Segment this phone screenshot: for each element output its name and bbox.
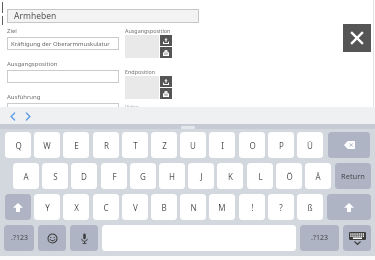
button[interactable]: Return: [335, 163, 371, 189]
button[interactable]: F: [101, 163, 127, 189]
staticText: Q: [15, 140, 22, 151]
button[interactable]: [7, 103, 119, 116]
button[interactable]: W: [34, 132, 60, 158]
staticText: A: [23, 171, 29, 182]
button[interactable]: J: [188, 163, 214, 189]
staticText: Z: [162, 140, 167, 151]
button[interactable]: D: [71, 163, 97, 189]
staticText: B: [161, 202, 167, 213]
button[interactable]: Voice input: [70, 225, 98, 251]
button[interactable]: B: [151, 194, 177, 220]
staticText: Video: [125, 103, 139, 110]
staticText: J: [200, 171, 203, 182]
staticText: L: [258, 171, 263, 182]
button[interactable]: Emoji: [38, 225, 66, 251]
staticText: M: [218, 202, 226, 213]
button[interactable]: U: [180, 132, 206, 158]
staticText: F: [112, 171, 117, 182]
staticText: D: [81, 171, 87, 182]
button[interactable]: Next field: [22, 110, 34, 122]
button[interactable]: T: [122, 132, 148, 158]
staticText: S: [53, 171, 58, 182]
staticText: Armheben: [14, 10, 57, 22]
button[interactable]: Take start position photo: [160, 47, 172, 58]
button[interactable]: Shift: [327, 194, 371, 220]
staticText: .?123: [311, 233, 328, 243]
staticText: V: [133, 202, 138, 213]
button[interactable]: Close: [343, 24, 371, 52]
staticText: X: [74, 202, 79, 213]
staticText: !: [251, 202, 254, 213]
button[interactable]: Kräftigung der Oberarmmuskulatur: [7, 37, 119, 50]
staticText: ß: [307, 202, 313, 213]
button[interactable]: I: [209, 132, 235, 158]
staticText: Ziel: [7, 27, 17, 35]
button[interactable]: M: [209, 194, 235, 220]
staticText: Ausgangsposition: [7, 60, 58, 68]
button[interactable]: N: [180, 194, 206, 220]
button[interactable]: C: [93, 194, 119, 220]
staticText: K: [228, 171, 233, 182]
staticText: ?: [279, 202, 283, 213]
button[interactable]: Backspace: [328, 132, 370, 158]
button[interactable]: Ö: [276, 163, 302, 189]
staticText: E: [74, 140, 79, 151]
staticText: C: [103, 202, 109, 213]
button[interactable]: Take end position photo: [160, 88, 172, 99]
button[interactable]: G: [130, 163, 156, 189]
staticText: Endposition: [125, 68, 156, 75]
button[interactable]: E: [63, 132, 89, 158]
button[interactable]: Ä: [305, 163, 331, 189]
button[interactable]: X: [63, 194, 89, 220]
button[interactable]: R: [93, 132, 119, 158]
staticText: Ausgangsposition: [125, 27, 171, 34]
button[interactable]: Q: [5, 132, 31, 158]
button[interactable]: Hide keyboard: [343, 225, 371, 251]
button[interactable]: Z: [151, 132, 177, 158]
staticText: P: [279, 140, 284, 151]
button[interactable]: P: [268, 132, 294, 158]
staticText: .?123: [11, 233, 28, 243]
button[interactable]: H: [159, 163, 185, 189]
button[interactable]: Y: [34, 194, 60, 220]
button[interactable]: Upload end position image: [160, 76, 172, 87]
staticText: Kräftigung der Oberarmmuskulatur: [11, 40, 110, 48]
staticText: O: [249, 140, 256, 151]
button[interactable]: [7, 70, 119, 83]
button[interactable]: .?123: [4, 225, 34, 251]
button[interactable]: Previous field: [7, 110, 19, 122]
staticText: U: [190, 140, 196, 151]
staticText: Ü: [307, 140, 313, 151]
staticText: T: [133, 140, 138, 151]
button[interactable]: A: [13, 163, 39, 189]
staticText: W: [43, 140, 51, 151]
button[interactable]: Shift: [5, 194, 31, 220]
staticText: Y: [45, 202, 50, 213]
button[interactable]: S: [42, 163, 68, 189]
button[interactable]: V: [122, 194, 148, 220]
staticText: Return: [341, 171, 365, 181]
staticText: I: [221, 140, 224, 151]
button[interactable]: Ü: [297, 132, 323, 158]
staticText: Ä: [315, 171, 321, 182]
staticText: H: [169, 171, 175, 182]
staticText: Ausführung: [7, 93, 41, 101]
button[interactable]: Upload start position image: [160, 35, 172, 46]
button[interactable]: ?: [268, 194, 294, 220]
staticText: Ö: [286, 171, 293, 182]
button[interactable]: O: [239, 132, 265, 158]
staticText: N: [190, 202, 197, 213]
button[interactable]: .?123: [300, 225, 339, 251]
staticText: G: [140, 171, 146, 182]
staticText: R: [104, 140, 109, 151]
button[interactable]: L: [247, 163, 273, 189]
button[interactable]: !: [239, 194, 265, 220]
button[interactable]: ß: [297, 194, 323, 220]
button[interactable]: Armheben: [7, 9, 199, 23]
button[interactable]: K: [217, 163, 243, 189]
